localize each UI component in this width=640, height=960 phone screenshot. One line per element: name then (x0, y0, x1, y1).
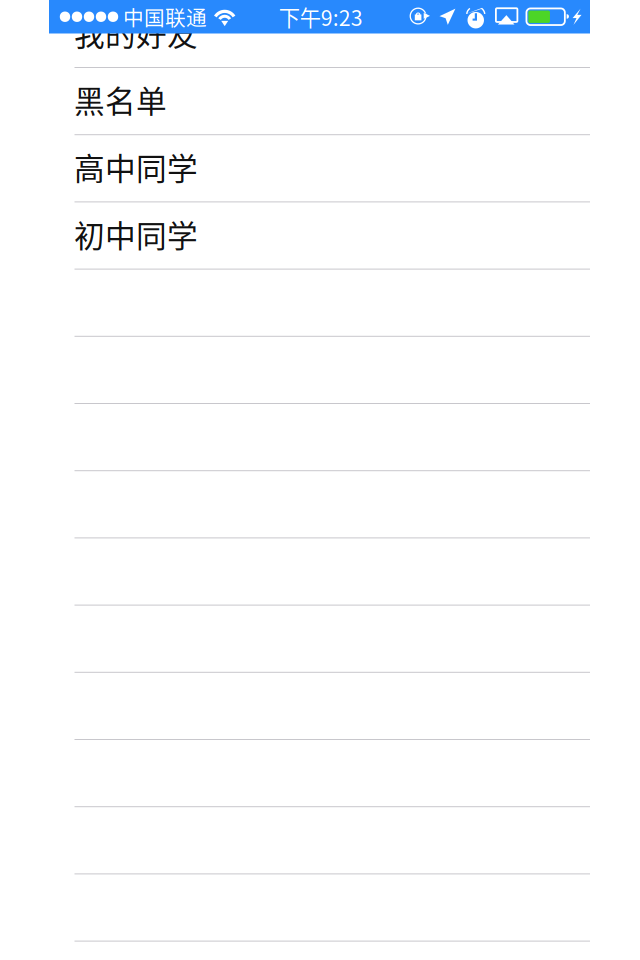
button[interactable]: 我的好友 (0, 1, 640, 68)
button[interactable]: 高中同学 (0, 135, 640, 202)
staticText: 我的好友 (74, 10, 198, 54)
staticText: 下午9:23 (279, 1, 363, 32)
button[interactable]: 黑名单 (0, 68, 640, 135)
staticText: 高中同学 (74, 144, 198, 189)
staticText: 黑名单 (74, 77, 167, 122)
staticText: 中国联通 (123, 2, 207, 32)
button[interactable]: 初中同学 (0, 202, 640, 270)
staticText: 初中同学 (74, 212, 198, 256)
